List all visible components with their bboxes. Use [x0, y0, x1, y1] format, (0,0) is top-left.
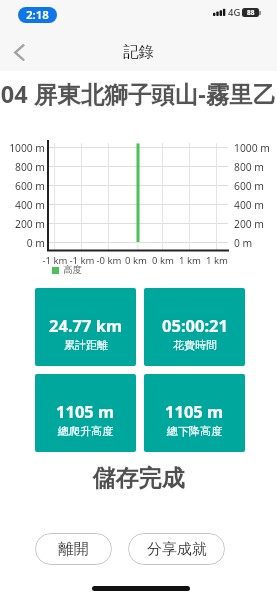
staticText: 儲存完成: [0, 464, 277, 493]
button[interactable]: 24.77 km: [35, 288, 136, 366]
staticText: -1 km: [67, 254, 97, 267]
staticText: 200 m: [5, 217, 45, 231]
staticText: 花費時間: [173, 338, 217, 352]
staticText: 24.77 km: [49, 314, 122, 336]
staticText: 總下降高度: [167, 424, 222, 438]
staticText: 600 m: [234, 179, 264, 193]
staticText: 88: [247, 8, 255, 17]
staticText: 1000 m: [5, 141, 45, 155]
button[interactable]: 1105 m: [144, 374, 245, 452]
staticText: 4G: [228, 6, 241, 19]
staticText: 0 m: [234, 236, 253, 250]
staticText: 2:18: [26, 7, 49, 23]
staticText: 800 m: [234, 160, 264, 174]
staticText: 400 m: [5, 198, 45, 212]
staticText: 800 m: [5, 160, 45, 174]
staticText: 1000 m: [234, 141, 270, 155]
button[interactable]: 分享成就: [128, 533, 225, 565]
staticText: 0 km: [148, 254, 178, 267]
staticText: 0 km: [121, 254, 151, 267]
staticText: 1105 m: [165, 400, 224, 422]
button[interactable]: 離開: [35, 533, 112, 565]
button[interactable]: 2:18: [18, 7, 57, 23]
button[interactable]: 1105 m: [35, 374, 136, 452]
staticText: 400 m: [234, 198, 264, 212]
staticText: 600 m: [5, 179, 45, 193]
staticText: -0 km: [94, 254, 124, 267]
staticText: 累計距離: [64, 338, 108, 352]
staticText: 1105 m: [56, 400, 115, 422]
button[interactable]: 05:00:21: [144, 288, 245, 366]
staticText: 05:00:21: [162, 314, 228, 336]
staticText: 離開: [58, 539, 89, 559]
staticText: 分享成就: [147, 540, 207, 559]
staticText: 200 m: [234, 217, 264, 231]
button[interactable]: [14, 44, 25, 61]
staticText: 1 km: [202, 254, 232, 267]
staticText: 記錄: [0, 42, 277, 62]
staticText: 總爬升高度: [58, 424, 113, 438]
staticText: 1 km: [175, 254, 205, 267]
staticText: 04 屏東北獅子頭山-霧里乙: [0, 78, 277, 110]
staticText: 高度: [63, 264, 82, 276]
staticText: -1 km: [40, 254, 70, 267]
staticText: 0 m: [5, 236, 45, 250]
